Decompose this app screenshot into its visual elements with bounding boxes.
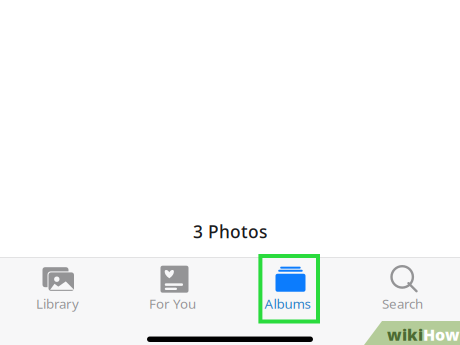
button[interactable]: Search: [345, 258, 460, 322]
staticText: Albums: [264, 295, 310, 312]
button[interactable]: Albums: [230, 258, 345, 322]
button[interactable]: Library: [0, 258, 115, 322]
staticText: How: [423, 324, 460, 345]
button[interactable]: For You: [115, 258, 230, 322]
staticText: wiki: [387, 324, 423, 345]
staticText: Search: [382, 295, 423, 312]
staticText: Library: [36, 295, 79, 312]
staticText: 3 Photos: [193, 220, 267, 243]
staticText: For You: [149, 295, 196, 312]
